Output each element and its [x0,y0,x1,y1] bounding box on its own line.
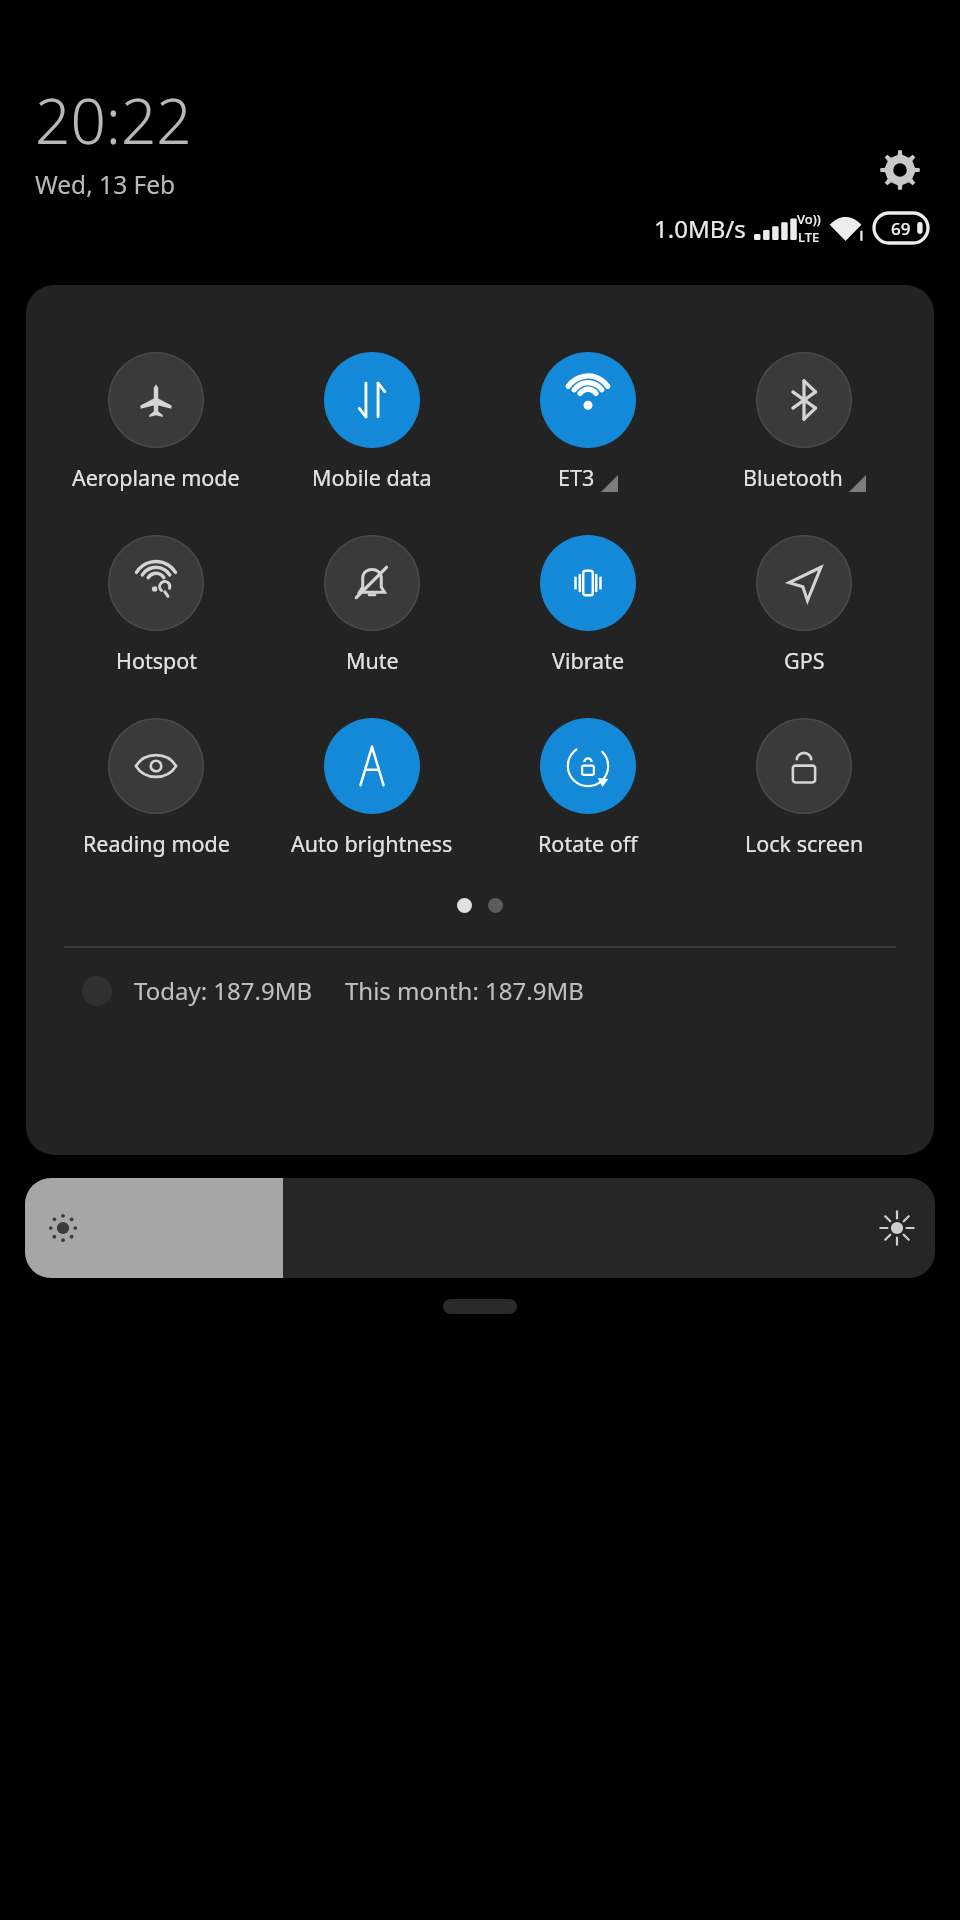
staticText: Lock screen [745,829,864,858]
staticText: Auto brightness [291,829,453,858]
button[interactable]: Hotspot [48,535,264,675]
staticText: Today: 187.9MB [134,974,313,1007]
button[interactable]: Aeroplane mode [48,352,264,492]
button[interactable]: Mobile data [264,352,480,492]
staticText: Wed, 13 Feb [35,168,176,201]
button[interactable]: GPS [696,535,912,675]
staticText: Rotate off [538,829,638,858]
staticText: Vo)) [797,210,821,228]
button[interactable]: Mute [264,535,480,675]
staticText: Hotspot [116,646,197,675]
staticText: ET3 [558,463,595,492]
button[interactable]: Auto brightness [264,718,480,858]
button[interactable]: Bluetooth [696,352,912,492]
button[interactable]: Lock screen [696,718,912,858]
staticText: Mute [346,646,399,675]
staticText: GPS [784,646,825,675]
button[interactable]: Vibrate [480,535,696,675]
button[interactable]: Settings [868,138,932,202]
staticText: Vibrate [552,646,625,675]
staticText: Bluetooth [743,463,843,492]
staticText: 20:22 [35,78,192,162]
staticText: Aeroplane mode [72,463,240,492]
button[interactable]: Brightness [25,1178,935,1278]
staticText: This month: 187.9MB [345,974,584,1007]
staticText: Mobile data [312,463,432,492]
staticText: fonearena [148,930,467,1020]
staticText: Reading mode [83,829,230,858]
staticText: 1.0MB/s [654,212,746,245]
staticText: 69 [891,217,911,240]
staticText: LTE [798,228,820,246]
button[interactable]: Reading mode [48,718,264,858]
button[interactable]: ET3 [480,352,696,492]
button[interactable]: Rotate off [480,718,696,858]
